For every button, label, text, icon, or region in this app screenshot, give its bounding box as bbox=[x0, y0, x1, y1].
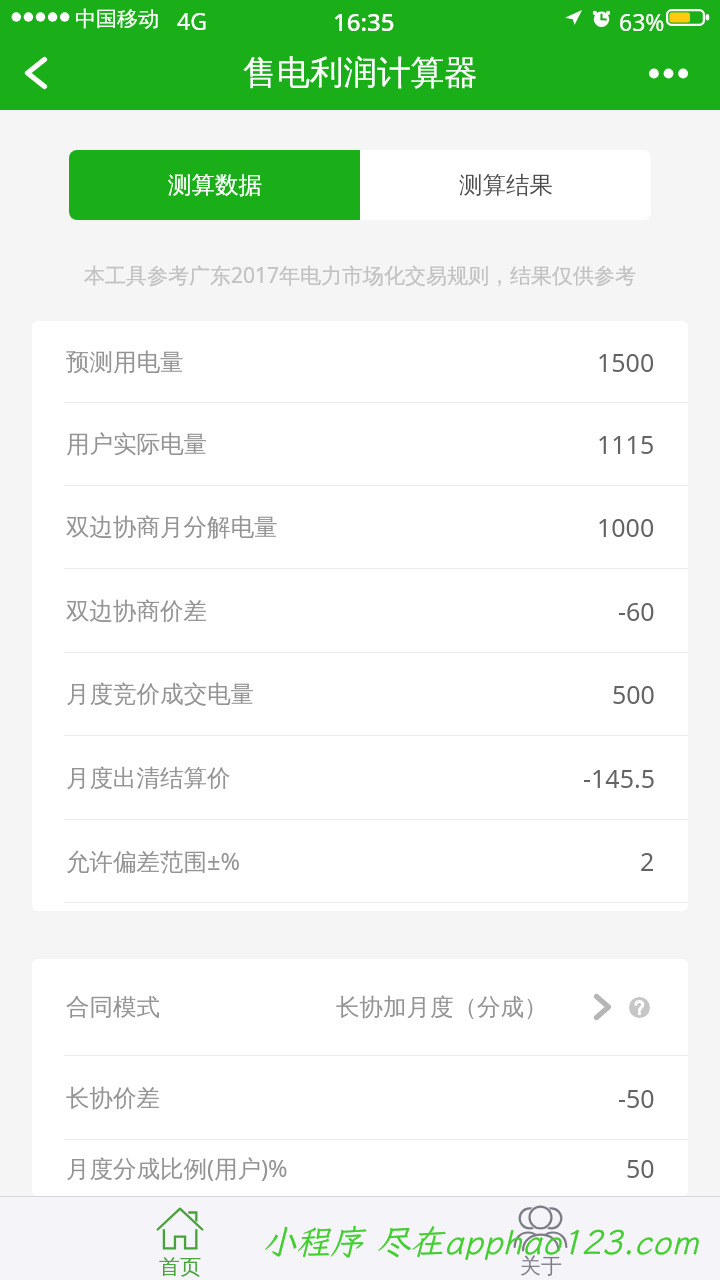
staticText: 合同模式 bbox=[66, 992, 160, 1022]
staticText: 月度竞价成交电量 bbox=[66, 679, 254, 709]
button[interactable]: Back bbox=[0, 43, 72, 103]
button[interactable]: 双边协商价差 bbox=[32, 569, 688, 652]
button[interactable]: 首页 bbox=[0, 1197, 360, 1280]
staticText: 允许偏差范围±% bbox=[66, 845, 240, 877]
button[interactable]: 允许偏差范围±% bbox=[32, 820, 688, 902]
button[interactable]: 测算结果 bbox=[360, 150, 651, 220]
staticText: 长协加月度（分成） bbox=[336, 992, 548, 1022]
button[interactable]: 合同模式 bbox=[32, 959, 688, 1055]
staticText: 1000 bbox=[597, 510, 655, 544]
staticText: 1115 bbox=[597, 427, 655, 461]
button[interactable]: 预测用电量 bbox=[32, 321, 688, 402]
button[interactable]: More options bbox=[632, 43, 704, 103]
button[interactable]: 双边协商月分解电量 bbox=[32, 486, 688, 568]
button[interactable]: 月度出清结算价 bbox=[32, 736, 688, 819]
staticText: 双边协商月分解电量 bbox=[66, 512, 278, 542]
staticText: -60 bbox=[618, 594, 655, 628]
staticText: 测算数据 bbox=[168, 170, 262, 200]
staticText: 本工具参考广东2017年电力市场化交易规则，结果仅供参考 bbox=[0, 261, 720, 290]
button[interactable]: 关于 bbox=[360, 1197, 720, 1280]
button[interactable]: 用户实际电量 bbox=[32, 403, 688, 485]
button[interactable]: 月度竞价成交电量 bbox=[32, 653, 688, 735]
staticText: 双边协商价差 bbox=[66, 596, 207, 626]
staticText: 用户实际电量 bbox=[66, 429, 207, 459]
staticText: 2 bbox=[640, 844, 655, 878]
staticText: -50 bbox=[618, 1081, 655, 1115]
staticText: 63% bbox=[619, 6, 665, 37]
staticText: 50 bbox=[626, 1151, 655, 1185]
staticText: -145.5 bbox=[583, 761, 655, 795]
button[interactable]: 长协价差 bbox=[32, 1056, 688, 1139]
staticText: 售电利润计算器 bbox=[243, 52, 478, 94]
staticText: 500 bbox=[612, 677, 655, 711]
staticText: 预测用电量 bbox=[66, 347, 184, 377]
staticText: 中国移动 bbox=[75, 6, 159, 32]
staticText: 月度出清结算价 bbox=[66, 763, 231, 793]
staticText: 关于 bbox=[520, 1253, 562, 1279]
button[interactable]: 月度分成比例(用户)% bbox=[32, 1140, 688, 1196]
staticText: 4G bbox=[177, 5, 207, 36]
staticText: 长协价差 bbox=[66, 1083, 160, 1113]
staticText: 测算结果 bbox=[459, 170, 553, 200]
button[interactable]: 测算数据 bbox=[69, 150, 360, 220]
staticText: 16:35 bbox=[333, 5, 395, 38]
staticText: 小程序 尽在apphao123.com bbox=[262, 1219, 699, 1264]
staticText: 月度分成比例(用户)% bbox=[66, 1152, 288, 1184]
staticText: 1500 bbox=[597, 345, 655, 379]
staticText: 首页 bbox=[159, 1254, 201, 1280]
